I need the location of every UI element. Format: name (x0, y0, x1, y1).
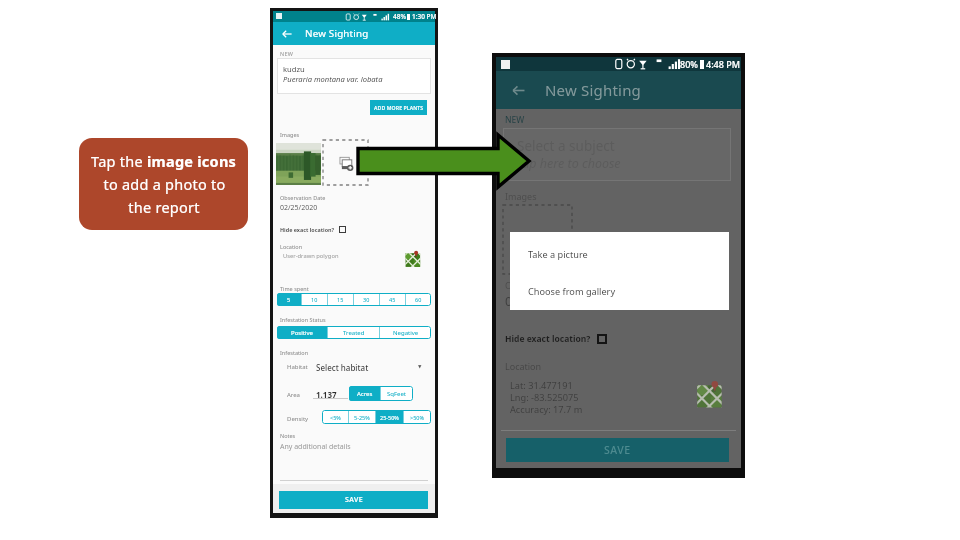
staticText: Infestation Status (280, 316, 326, 323)
button[interactable]: Add photo (323, 140, 368, 185)
button[interactable]: 45 (380, 293, 405, 306)
staticText: Images (505, 190, 537, 202)
button[interactable]: <5% (322, 410, 348, 424)
staticText: Density (287, 415, 309, 423)
staticText: 5 (287, 296, 291, 303)
staticText: Acres (357, 390, 373, 398)
staticText: <5% (330, 414, 341, 421)
staticText: 80% (680, 58, 698, 70)
button[interactable]: Negative (380, 326, 431, 339)
staticText: 25-50% (380, 414, 399, 421)
staticText: to add a photo to (103, 174, 226, 194)
staticText: User-drawn polygon (283, 252, 339, 260)
button[interactable]: ADD MORE PLANTS (370, 100, 427, 115)
staticText: Notes (280, 432, 296, 439)
button[interactable]: Add photo (503, 205, 572, 274)
staticText: 02/25/2020 (280, 203, 318, 213)
staticText: Hide exact location? (505, 333, 591, 345)
staticText: 15 (337, 296, 344, 303)
staticText: Habitat (287, 363, 308, 371)
staticText: 45 (389, 296, 396, 303)
staticText: Lat: 31.477191 (510, 379, 573, 392)
staticText: Pueraria montana var. lobata (283, 74, 383, 84)
button[interactable]: Treated (328, 326, 379, 339)
button[interactable]: Acres (349, 386, 380, 401)
staticText: 5-25% (354, 414, 370, 421)
staticText: 10 (311, 296, 318, 303)
staticText: Time spent (280, 285, 309, 292)
button[interactable]: Positive (277, 326, 327, 339)
staticText: Select a subject (517, 137, 615, 155)
staticText: the report (128, 197, 200, 217)
staticText: SAVE (345, 495, 363, 505)
button[interactable]: SAVE (506, 438, 729, 462)
staticText: >50% (410, 414, 425, 421)
staticText: NEW (505, 114, 525, 126)
staticText: Select habitat (316, 362, 369, 373)
staticText: Location (280, 243, 303, 250)
staticText: SqFeet (387, 390, 407, 398)
staticText: Observation Date (280, 194, 326, 201)
button[interactable]: Back (503, 71, 533, 109)
staticText: Negative (393, 329, 419, 337)
staticText: 02/25/2020 (505, 293, 572, 310)
button[interactable]: >50% (404, 410, 431, 424)
staticText: Location (505, 360, 542, 372)
button[interactable]: 25-50% (376, 410, 403, 424)
staticText: Tap here to choose (517, 155, 621, 172)
staticText: Take a picture (528, 248, 588, 261)
staticText: Observation Date (505, 279, 580, 291)
button[interactable]: 5-25% (349, 410, 375, 424)
button[interactable]: Hide exact location? (280, 223, 346, 235)
button[interactable]: Select a subject (503, 128, 731, 181)
button[interactable]: 15 (328, 293, 353, 306)
staticText: Hide exact location? (280, 226, 335, 233)
staticText: Accuracy: 17.7 m (510, 403, 583, 416)
button[interactable]: Choose from gallery (510, 273, 729, 310)
staticText: New Sighting (545, 80, 642, 100)
button[interactable]: 30 (354, 293, 379, 306)
button[interactable]: Map (695, 380, 726, 411)
staticText: 30 (363, 296, 370, 303)
staticText: Area (287, 391, 300, 399)
button[interactable]: Take a picture (510, 232, 729, 273)
button[interactable]: SAVE (279, 491, 428, 509)
staticText: 48% (393, 12, 406, 21)
button[interactable]: Map (404, 250, 423, 269)
staticText: image icons (147, 151, 237, 171)
staticText: 4:48 PM (706, 58, 740, 70)
staticText: 1.137 (316, 389, 337, 400)
staticText: Treated (343, 329, 365, 337)
staticText: Choose from gallery (528, 285, 616, 298)
button[interactable]: Tap the (79, 138, 248, 230)
staticText: 1:30 PM (412, 12, 437, 21)
staticText: Infestation (280, 349, 309, 356)
staticText: NEW (280, 50, 294, 57)
staticText: New Sighting (305, 27, 369, 40)
button[interactable]: Hide exact location? (505, 331, 607, 347)
button[interactable]: 5 (277, 293, 301, 306)
staticText: 60 (415, 296, 422, 303)
staticText: Lng: -83.525075 (510, 391, 579, 404)
staticText: SAVE (604, 443, 631, 457)
button[interactable]: 10 (302, 293, 327, 306)
button[interactable]: Back (276, 22, 298, 45)
staticText: kudzu (283, 64, 305, 74)
staticText: Positive (291, 329, 313, 337)
button[interactable]: 60 (406, 293, 431, 306)
staticText: Any additional details (280, 442, 351, 452)
staticText: ▼ (418, 364, 422, 369)
staticText: ADD MORE PLANTS (374, 104, 424, 111)
button[interactable]: SqFeet (381, 386, 413, 401)
staticText: Images (280, 131, 300, 138)
staticText: Tap the (91, 151, 147, 171)
